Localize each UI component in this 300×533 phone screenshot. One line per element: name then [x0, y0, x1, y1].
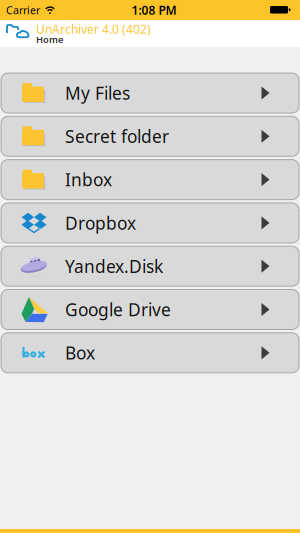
button[interactable]: Secret folder	[1, 116, 299, 156]
staticText: UnArchiver 4.0 (402)	[36, 21, 151, 37]
staticText: Inbox	[65, 168, 112, 191]
staticText: Dropbox	[65, 211, 136, 234]
button[interactable]: Inbox	[1, 160, 299, 200]
staticText: 1:08 PM	[131, 2, 176, 18]
button[interactable]: Dropbox	[1, 203, 299, 243]
button[interactable]: Yandex.Disk	[1, 246, 299, 286]
staticText: My Files	[65, 81, 130, 104]
button[interactable]: My Files	[1, 73, 299, 113]
staticText: Google Drive	[65, 298, 171, 321]
staticText: Carrier	[6, 3, 40, 17]
button[interactable]: Google Drive	[1, 289, 299, 329]
button[interactable]: Box	[1, 333, 299, 373]
staticText: Box	[65, 341, 95, 364]
staticText: Yandex.Disk	[65, 255, 163, 278]
staticText: Secret folder	[65, 125, 169, 148]
staticText: Home	[36, 33, 63, 46]
